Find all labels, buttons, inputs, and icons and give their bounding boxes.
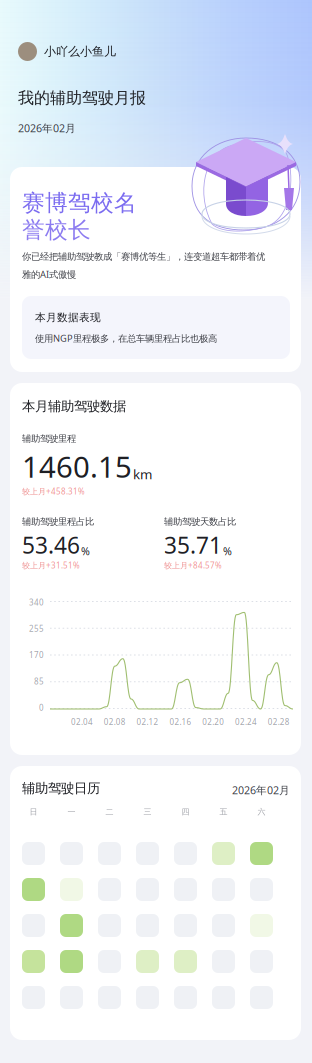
staticText: 53.46 (22, 530, 80, 560)
staticText: 02.04 (71, 717, 93, 727)
staticText: 六 (257, 807, 265, 817)
staticText: 02.28 (268, 717, 290, 727)
staticText: 170 (29, 650, 44, 660)
staticText: 35.71 (164, 530, 222, 560)
staticText: 雅的AI式傲慢 (22, 268, 76, 280)
staticText: 0 (39, 702, 44, 713)
staticText: 本月辅助驾驶数据 (22, 398, 126, 414)
staticText: 本月数据表现 (35, 311, 101, 324)
staticText: 四 (181, 807, 189, 817)
staticText: 02.24 (235, 717, 257, 727)
staticText: 辅助驾驶里程 (22, 433, 76, 444)
staticText: 02.20 (202, 717, 224, 727)
staticText: 02.12 (137, 717, 159, 727)
staticText: 你已经把辅助驾驶教成「赛博优等生」，连变道超车都带着优 (22, 251, 265, 262)
staticText: 赛博驾校名 (22, 189, 137, 217)
staticText: 一 (67, 807, 75, 817)
staticText: 2026年02月 (232, 783, 290, 797)
staticText: 辅助驾驶日历 (22, 780, 100, 796)
staticText: 02.08 (104, 717, 126, 727)
staticText: 较上月+458.31% (22, 486, 85, 497)
staticText: 1460.15 (22, 447, 132, 486)
staticText: 较上月+31.51% (22, 560, 80, 571)
staticText: 小吖么小鱼儿 (44, 44, 116, 59)
staticText: % (223, 544, 232, 558)
staticText: 340 (29, 597, 44, 608)
staticText: 02.16 (169, 717, 191, 727)
staticText: % (81, 544, 90, 558)
staticText: 255 (29, 623, 44, 634)
staticText: 辅助驾驶天数占比 (164, 516, 236, 527)
staticText: 使用NGP里程极多，在总车辆里程占比也极高 (35, 332, 217, 344)
button[interactable]: 小吖么小鱼儿 (18, 42, 116, 61)
staticText: 三 (143, 807, 151, 817)
staticText: km (133, 465, 152, 483)
staticText: 二 (105, 807, 113, 817)
staticText: 五 (219, 807, 227, 817)
staticText: 誉校长 (22, 216, 91, 244)
staticText: 2026年02月 (18, 121, 76, 135)
staticText: 85 (34, 676, 44, 687)
staticText: 日 (29, 807, 37, 817)
staticText: 较上月+84.57% (164, 560, 222, 571)
staticText: 我的辅助驾驶月报 (18, 88, 146, 108)
staticText: 辅助驾驶里程占比 (22, 516, 94, 527)
